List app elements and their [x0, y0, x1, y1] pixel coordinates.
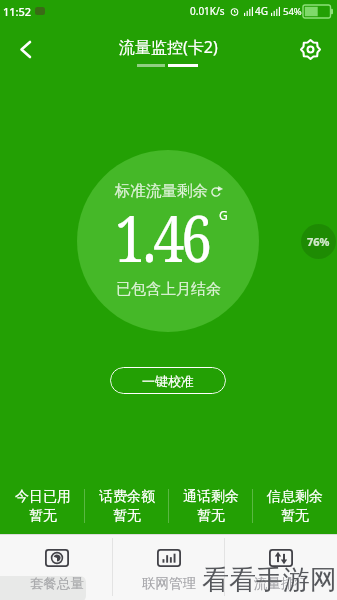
button[interactable]: 通话剩余 — [169, 481, 253, 531]
staticText: 流量排行 — [254, 575, 308, 592]
staticText: 今日已用 — [15, 488, 71, 506]
staticText: 已包含上月结余 — [116, 280, 221, 299]
staticText: 76% — [307, 234, 330, 249]
button[interactable]: 套餐总量 — [0, 535, 113, 600]
button[interactable]: 话费余额 — [85, 481, 169, 531]
button[interactable]: 今日已用 — [0, 481, 85, 531]
button[interactable]: Usage percent — [301, 224, 336, 259]
staticText: 联网管理 — [142, 575, 196, 592]
staticText: 一键校准 — [142, 373, 194, 389]
staticText: 11:52 — [3, 4, 32, 19]
button[interactable]: 流量排行 — [225, 535, 337, 600]
staticText: 标准流量剩余 — [115, 181, 208, 201]
staticText: 套餐总量 — [30, 575, 84, 592]
staticText: 暂无 — [281, 507, 309, 525]
staticText: 信息剩余 — [267, 488, 323, 506]
staticText: G — [219, 207, 228, 223]
staticText: 1.46 — [114, 195, 209, 281]
staticText: 看看手游网 — [202, 563, 337, 597]
button[interactable]: Settings — [290, 29, 330, 69]
staticText: 流量监控(卡2) — [119, 36, 218, 58]
button[interactable]: 信息剩余 — [253, 481, 337, 531]
button[interactable]: Back — [5, 29, 45, 69]
staticText: 4G — [255, 4, 268, 18]
staticText: 0.01K/s — [190, 4, 225, 18]
staticText: 54% — [283, 5, 302, 18]
staticText: 暂无 — [113, 507, 141, 525]
button[interactable]: 联网管理 — [113, 535, 225, 600]
staticText: 话费余额 — [99, 488, 155, 506]
staticText: 通话剩余 — [183, 488, 239, 506]
button[interactable]: 一键校准 — [110, 367, 226, 394]
staticText: 暂无 — [197, 507, 225, 525]
staticText: 暂无 — [29, 507, 57, 525]
